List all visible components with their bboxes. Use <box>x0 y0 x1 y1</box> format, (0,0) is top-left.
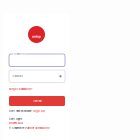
staticText: Can't Login? <box>9 117 22 120</box>
button[interactable]: Show password <box>59 75 62 77</box>
staticText: Password <box>12 75 22 78</box>
button[interactable]: Drivers FAQ <box>9 121 23 125</box>
button[interactable]: Sign up <box>33 109 45 113</box>
staticText: Sign up <box>33 109 45 113</box>
staticText: Email address <box>14 53 25 55</box>
button[interactable]: Forgot password? <box>9 87 39 91</box>
staticText: ontop <box>32 34 41 38</box>
staticText: Partner community <box>25 126 49 130</box>
staticText: A Cooperative <box>9 126 24 129</box>
button[interactable]: Continue <box>9 96 65 106</box>
staticText: Drivers FAQ <box>9 121 23 125</box>
staticText: Don't have an account? <box>9 109 32 112</box>
staticText: Continue <box>32 99 41 102</box>
staticText: Forgot password? <box>9 87 32 91</box>
